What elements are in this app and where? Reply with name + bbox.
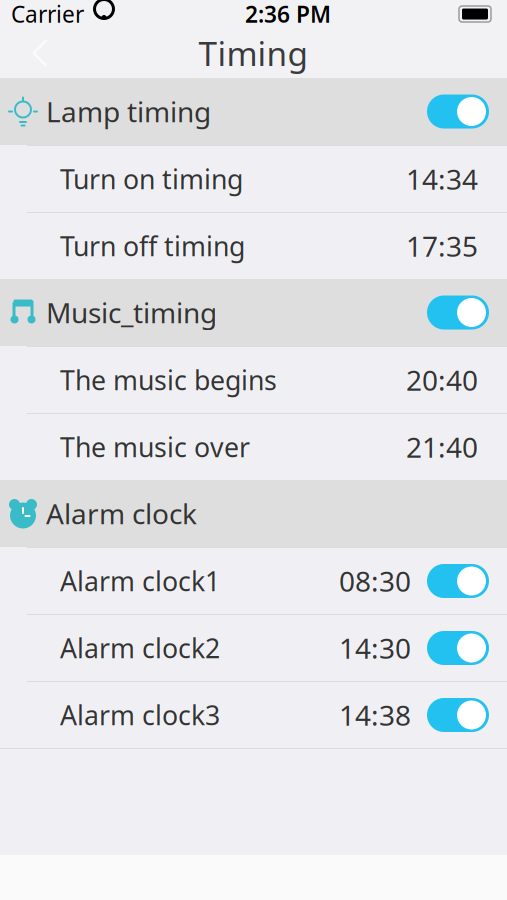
button[interactable]: The music begins <box>0 346 507 413</box>
staticText: Alarm clock3 <box>60 697 220 733</box>
button[interactable]: Toggle <box>427 94 489 128</box>
staticText: Turn on timing <box>60 161 243 197</box>
button[interactable]: Alarm clock1 <box>0 547 507 614</box>
staticText: Alarm clock1 <box>60 563 220 599</box>
staticText: Music_timing <box>46 294 217 331</box>
staticText: 20:40 <box>406 361 478 399</box>
button[interactable]: Music_timing <box>0 279 507 346</box>
button[interactable]: Turn on timing <box>0 145 507 212</box>
staticText: 14:30 <box>339 629 411 667</box>
button[interactable]: Toggle <box>427 295 489 329</box>
staticText: 08:30 <box>339 562 411 600</box>
staticText: Alarm clock <box>46 495 197 532</box>
staticText: 21:40 <box>406 428 478 466</box>
button[interactable]: The music over <box>0 413 507 480</box>
button[interactable]: Toggle <box>427 631 489 665</box>
button[interactable]: Toggle <box>427 698 489 732</box>
button[interactable]: Alarm clock2 <box>0 614 507 681</box>
button[interactable]: Toggle <box>427 564 489 598</box>
staticText: Timing <box>198 31 308 75</box>
staticText: 14:34 <box>406 160 478 198</box>
button[interactable]: Alarm clock <box>0 480 507 547</box>
staticText: Lamp timing <box>46 93 211 130</box>
staticText: 17:35 <box>406 227 478 265</box>
staticText: The music begins <box>60 362 277 398</box>
button[interactable]: Lamp timing <box>0 78 507 145</box>
button[interactable]: Alarm clock3 <box>0 681 507 748</box>
staticText: 2:36 PM <box>245 0 331 29</box>
staticText: Carrier <box>11 0 84 29</box>
staticText: 14:38 <box>339 696 411 734</box>
staticText: Alarm clock2 <box>60 630 220 666</box>
button[interactable]: Turn off timing <box>0 212 507 279</box>
staticText: Turn off timing <box>60 228 245 264</box>
staticText: The music over <box>60 429 250 465</box>
